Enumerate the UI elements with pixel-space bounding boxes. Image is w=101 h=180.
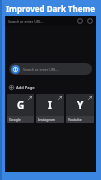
staticText: Y — [77, 98, 84, 112]
staticText: Add Page — [16, 85, 35, 90]
staticText: G — [17, 98, 25, 112]
staticText: Google — [9, 117, 21, 122]
button[interactable]: G — [7, 94, 34, 123]
button[interactable]: Menu — [87, 18, 93, 24]
button[interactable]: Search or enter URL… — [9, 63, 92, 75]
staticText: I — [48, 98, 52, 112]
button[interactable]: Tabs — [77, 18, 83, 24]
button[interactable]: I — [36, 94, 64, 123]
button[interactable]: Search or enter URL… — [8, 19, 77, 24]
staticText: Youtube — [68, 117, 82, 122]
button[interactable]: Add Page — [9, 83, 35, 91]
staticText: Search or enter URL… — [23, 67, 59, 72]
staticText: Improved Dark Theme — [6, 3, 96, 14]
staticText: Search or enter URL… — [8, 19, 44, 24]
button[interactable]: Y — [66, 94, 94, 123]
staticText: Instagram — [38, 117, 56, 122]
